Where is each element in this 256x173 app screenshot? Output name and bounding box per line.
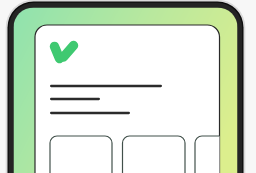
button[interactable]: Device preview of checklist app screen xyxy=(0,0,256,173)
